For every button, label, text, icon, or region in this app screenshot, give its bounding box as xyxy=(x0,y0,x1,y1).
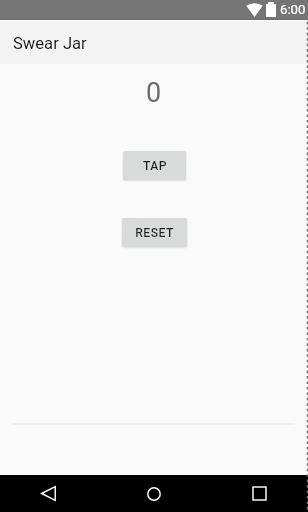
button[interactable]: Home xyxy=(129,475,179,512)
button[interactable]: Back xyxy=(23,475,73,512)
staticText: 0 xyxy=(146,77,162,109)
staticText: 6:00 xyxy=(280,2,306,17)
staticText: TAP xyxy=(143,159,167,173)
staticText: Swear Jar xyxy=(13,34,87,53)
staticText: RESET xyxy=(135,226,174,240)
button[interactable]: TAP xyxy=(123,151,186,180)
button[interactable]: Recent apps xyxy=(234,475,284,512)
button[interactable]: RESET xyxy=(122,218,187,247)
